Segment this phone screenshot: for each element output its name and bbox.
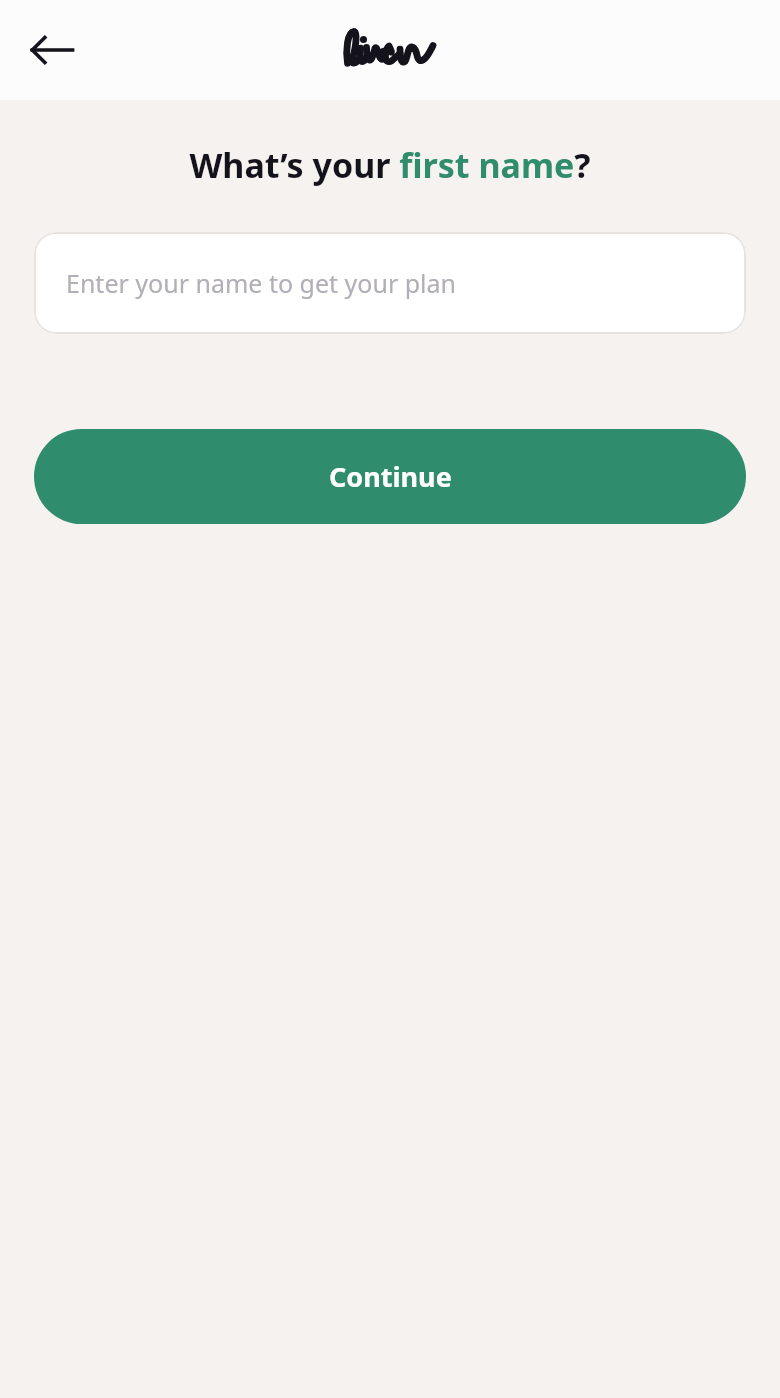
button[interactable]: Enter your name to get your plan bbox=[34, 232, 746, 334]
staticText: Enter your name to get your plan bbox=[66, 266, 457, 300]
staticText: What’s your first name? bbox=[16, 142, 764, 188]
button[interactable]: Back bbox=[16, 14, 88, 86]
button[interactable]: Continue bbox=[34, 429, 746, 524]
staticText: Continue bbox=[329, 458, 452, 495]
